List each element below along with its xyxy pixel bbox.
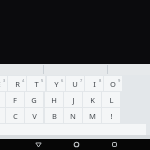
button[interactable]: V <box>25 108 43 123</box>
button[interactable]: Recent apps <box>101 139 127 150</box>
button[interactable]: I <box>85 76 103 91</box>
staticText: N <box>70 111 76 121</box>
button[interactable]: H <box>45 92 63 107</box>
staticText: V <box>32 111 37 121</box>
button[interactable]: G <box>25 92 43 107</box>
button[interactable]: J <box>64 92 82 107</box>
button[interactable]: Home <box>63 139 89 150</box>
staticText: B <box>52 111 57 121</box>
button[interactable]: K <box>83 92 101 107</box>
staticText: 7 <box>80 78 83 83</box>
staticText: 3 <box>3 78 6 83</box>
staticText: 6 <box>61 78 64 83</box>
button[interactable]: Y <box>47 76 65 91</box>
staticText: L <box>109 95 114 105</box>
button[interactable]: F <box>6 92 24 107</box>
button[interactable]: ! <box>102 108 120 123</box>
staticText: M <box>89 111 96 121</box>
button[interactable]: B <box>45 108 63 123</box>
staticText: 5 <box>41 78 44 83</box>
button[interactable]: Back <box>25 139 51 150</box>
button[interactable]: U <box>66 76 84 91</box>
staticText: 8 <box>99 78 102 83</box>
staticText: F <box>13 95 17 105</box>
staticText: U <box>72 79 78 89</box>
button[interactable]: M <box>83 108 101 123</box>
staticText: C <box>13 111 18 121</box>
staticText: J <box>72 95 75 105</box>
staticText: E <box>0 79 1 89</box>
button[interactable]: R <box>8 76 26 91</box>
staticText: O <box>110 79 116 89</box>
button[interactable]: E <box>0 76 7 91</box>
staticText: 4 <box>22 78 25 83</box>
staticText: ! <box>110 111 113 121</box>
staticText: G <box>31 95 37 105</box>
button[interactable]: T <box>27 76 45 91</box>
button[interactable]: C <box>6 108 24 123</box>
staticText: K <box>90 95 95 105</box>
staticText: H <box>51 95 57 105</box>
button[interactable]: O <box>104 76 122 91</box>
staticText: 9 <box>118 78 121 83</box>
staticText: T <box>34 79 39 89</box>
button[interactable]: L <box>102 92 120 107</box>
staticText: R <box>15 79 20 89</box>
button[interactable]: N <box>64 108 82 123</box>
staticText: I <box>93 79 96 89</box>
staticText: Y <box>54 79 59 89</box>
